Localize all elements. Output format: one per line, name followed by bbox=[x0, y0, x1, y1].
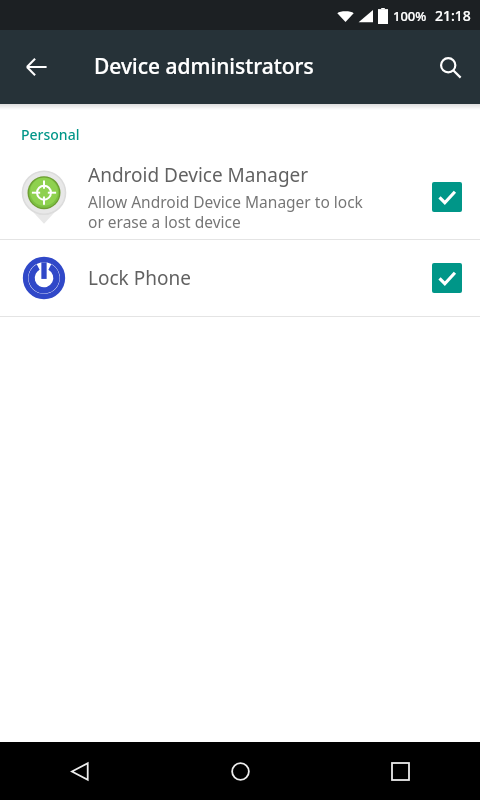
button[interactable]: Search bbox=[426, 43, 474, 91]
staticText: Lock Phone bbox=[88, 265, 191, 291]
staticText: Personal bbox=[21, 125, 80, 144]
button[interactable]: Enabled bbox=[414, 250, 480, 306]
button[interactable]: Back bbox=[0, 742, 160, 800]
button[interactable]: Recent apps bbox=[320, 742, 480, 800]
button[interactable]: Enabled bbox=[414, 169, 480, 225]
staticText: 21:18 bbox=[435, 6, 471, 25]
button[interactable]: Android Device Manager bbox=[0, 154, 480, 239]
staticText: Android Device Manager bbox=[88, 162, 309, 188]
button[interactable]: Back bbox=[13, 43, 61, 91]
button[interactable]: Lock Phone bbox=[0, 240, 480, 316]
staticText: Allow Android Device Manager to lock or … bbox=[88, 191, 363, 232]
staticText: 100% bbox=[393, 7, 427, 25]
staticText: Device administrators bbox=[94, 52, 314, 81]
button[interactable]: Home bbox=[160, 742, 320, 800]
